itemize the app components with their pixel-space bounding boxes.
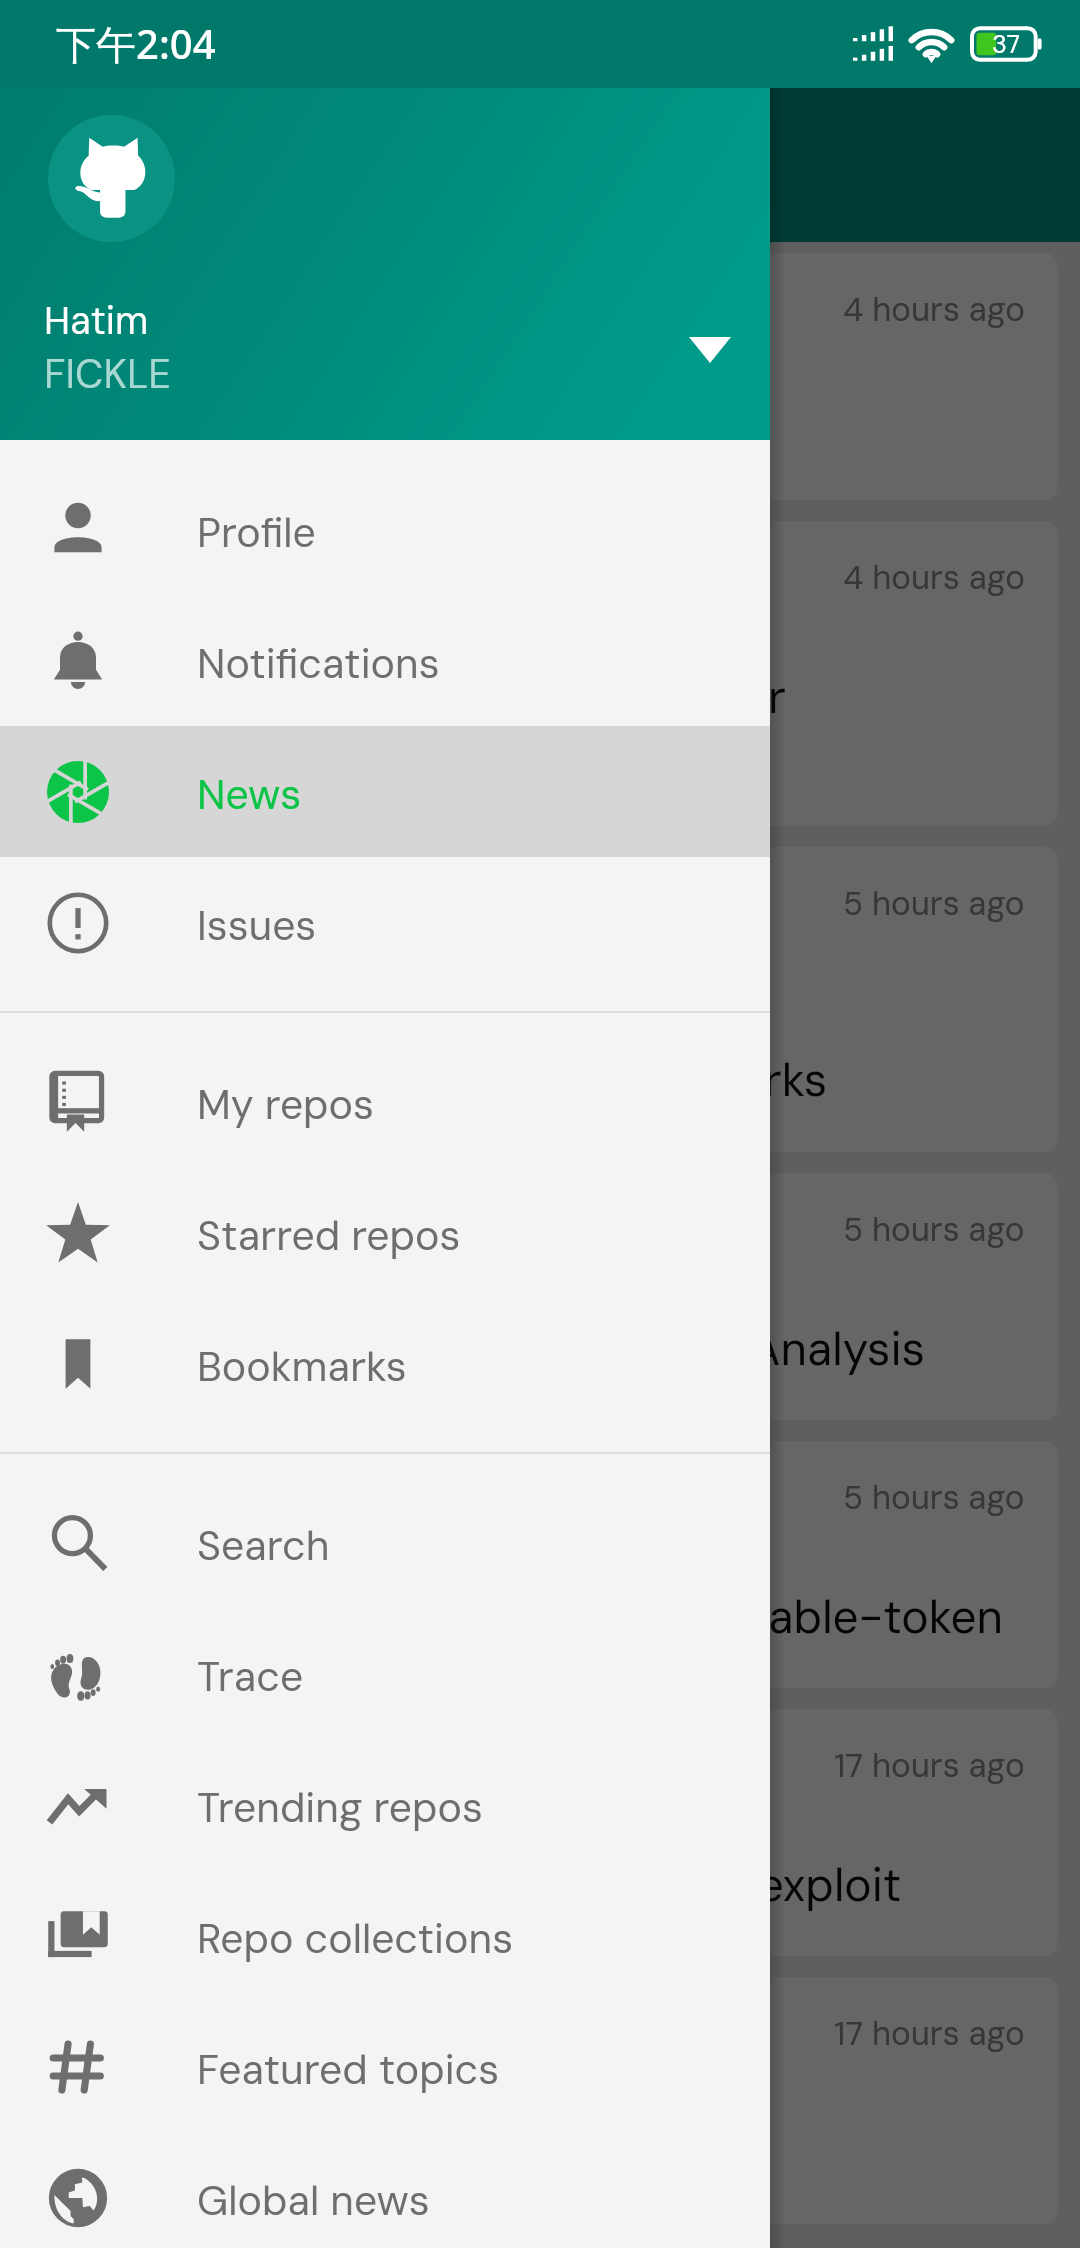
button[interactable]: Trace	[0, 1608, 770, 1739]
staticText: 17 hours ago	[834, 1744, 1025, 1787]
staticText: Search	[197, 1519, 330, 1572]
staticText: Trending repos	[197, 1781, 483, 1834]
staticText: FICKLE	[44, 348, 172, 400]
staticText: Featured topics	[197, 2043, 500, 2096]
staticText: Notifications	[197, 637, 440, 690]
button[interactable]: 4 hours ago	[22, 253, 1058, 500]
staticText: Starred repos	[197, 1209, 461, 1262]
staticText: Linux kernel local privilege chain explo…	[58, 1855, 902, 1915]
button[interactable]: Notifications	[0, 595, 770, 726]
button[interactable]: 17 hours ago	[22, 1709, 1058, 1956]
staticText: Serverless edge cache	[58, 399, 543, 459]
staticText: 4 hours ago	[843, 288, 1025, 331]
button[interactable]: Trending repos	[0, 1739, 770, 1870]
staticText: Bookmarks	[197, 1340, 407, 1393]
staticText: 5 hours ago	[843, 1476, 1025, 1519]
button[interactable]: 4 hours ago	[22, 521, 1058, 826]
button[interactable]: Profile	[0, 464, 770, 595]
staticText: News	[197, 768, 302, 821]
button[interactable]: 5 hours ago	[22, 1173, 1058, 1420]
staticText: Hatim	[44, 296, 149, 345]
button[interactable]: Global news	[0, 2132, 770, 2248]
button[interactable]: 17 hours ago	[22, 1977, 1058, 2224]
staticText: My repos	[197, 1078, 374, 1131]
staticText: 4 hours ago	[843, 556, 1025, 599]
button[interactable]: Starred repos	[0, 1167, 770, 1298]
staticText: 5 hours ago	[843, 882, 1025, 925]
button[interactable]: My repos	[0, 1036, 770, 1167]
button[interactable]: Featured topics	[0, 2001, 770, 2132]
staticText: 5 hours ago	[843, 1208, 1025, 1251]
button[interactable]: Repo collections	[0, 1870, 770, 2001]
staticText: Repo collections	[197, 1912, 514, 1965]
staticText: Profile	[197, 506, 316, 559]
button[interactable]: Issues	[0, 857, 770, 988]
staticText: Crypto-mining botnet hits Docker nodes i…	[58, 667, 786, 784]
staticText: Issues	[197, 899, 317, 952]
button[interactable]: Switch account	[660, 300, 760, 400]
staticText: 17 hours ago	[834, 2012, 1025, 2055]
staticText: 下午2:04	[56, 16, 216, 71]
staticText: Global news	[197, 2174, 430, 2227]
staticText: Trending repos digest	[58, 2123, 524, 2183]
staticText: How GitHub Actions powers open to the pu…	[58, 993, 828, 1110]
button[interactable]: 5 hours ago	[22, 1441, 1058, 1688]
button[interactable]: Bookmarks	[0, 1298, 770, 1429]
button[interactable]: News	[0, 726, 770, 857]
staticText: Trace	[197, 1650, 304, 1703]
button[interactable]: 5 hours ago	[22, 847, 1058, 1152]
staticText: Low Level Protocol Deep Packet Analysis	[58, 1319, 925, 1379]
staticText: 37	[992, 28, 1020, 61]
staticText: Leaked CI secret grants a refreshable-to…	[58, 1587, 1004, 1647]
button[interactable]: Search	[0, 1477, 770, 1608]
